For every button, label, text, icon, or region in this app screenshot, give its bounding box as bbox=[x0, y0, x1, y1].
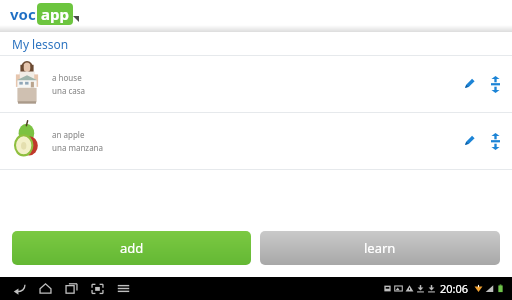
button[interactable]: Reorder bbox=[484, 73, 506, 95]
button[interactable]: Edit bbox=[458, 73, 480, 95]
staticText: una manzana bbox=[52, 142, 104, 153]
staticText: an apple bbox=[52, 129, 85, 140]
staticText: app bbox=[41, 4, 69, 24]
button[interactable]: Recents bbox=[58, 277, 84, 300]
button[interactable]: an apple bbox=[0, 113, 512, 169]
staticText: learn bbox=[364, 239, 396, 257]
staticText: voc bbox=[10, 4, 36, 24]
button[interactable]: Back bbox=[6, 277, 32, 300]
button[interactable]: Menu bbox=[110, 277, 136, 300]
button[interactable]: a house bbox=[0, 56, 512, 112]
button[interactable]: Edit bbox=[458, 130, 480, 152]
staticText: add bbox=[120, 239, 144, 257]
staticText: 20:06 bbox=[440, 281, 469, 296]
staticText: una casa bbox=[52, 85, 86, 96]
button[interactable]: add bbox=[12, 231, 251, 265]
staticText: My lesson bbox=[12, 36, 69, 52]
staticText: a house bbox=[52, 72, 82, 83]
button[interactable]: Home bbox=[32, 277, 58, 300]
button[interactable]: Screenshot bbox=[84, 277, 110, 300]
button[interactable]: learn bbox=[260, 231, 500, 265]
button[interactable]: Reorder bbox=[484, 130, 506, 152]
